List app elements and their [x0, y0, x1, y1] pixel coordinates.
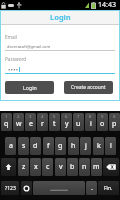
button[interactable]: Settings: [21, 181, 32, 195]
button[interactable]: 6: [61, 113, 72, 131]
staticText: c: [46, 162, 50, 172]
staticText: y: [65, 119, 69, 129]
staticText: h: [71, 141, 76, 151]
staticText: 8: [89, 114, 92, 120]
staticText: 1: [5, 114, 8, 120]
staticText: b: [70, 162, 75, 172]
staticText: .: [91, 183, 93, 193]
button[interactable]: k: [93, 137, 104, 155]
staticText: ?123: [5, 185, 16, 192]
staticText: r: [41, 119, 44, 129]
staticText: 14:43: [98, 0, 116, 10]
staticText: q: [4, 119, 9, 129]
staticText: u: [76, 119, 81, 129]
staticText: d: [33, 141, 38, 151]
button[interactable]: 8: [85, 113, 96, 131]
button[interactable]: 2: [13, 113, 24, 131]
button[interactable]: Shift: [1, 158, 16, 176]
staticText: Create account: [71, 84, 106, 91]
staticText: o: [100, 119, 105, 129]
staticText: s: [22, 141, 26, 151]
button[interactable]: x: [30, 158, 41, 176]
button[interactable]: Fin.: [98, 181, 119, 195]
staticText: i: [90, 119, 92, 129]
button[interactable]: 5: [49, 113, 60, 131]
staticText: 9: [101, 114, 104, 120]
button[interactable]: 9: [97, 113, 108, 131]
button[interactable]: 7: [73, 113, 84, 131]
staticText: 3: [29, 114, 32, 120]
button[interactable]: 3: [25, 113, 36, 131]
button[interactable]: f: [43, 137, 54, 155]
staticText: 7: [77, 114, 80, 120]
staticText: e: [29, 119, 33, 129]
staticText: k: [97, 141, 101, 151]
staticText: 0: [113, 114, 116, 120]
button[interactable]: 0: [109, 113, 120, 131]
button[interactable]: m: [91, 158, 102, 176]
staticText: j: [85, 141, 87, 151]
button[interactable]: a: [5, 137, 16, 155]
staticText: Fin.: [104, 185, 113, 192]
staticText: v: [59, 162, 63, 172]
button[interactable]: l: [105, 137, 116, 155]
staticText: 2: [17, 114, 20, 120]
staticText: Password: [5, 56, 27, 62]
button[interactable]: Login: [5, 81, 54, 94]
staticText: f: [47, 141, 50, 151]
button[interactable]: 4: [37, 113, 48, 131]
staticText: 6: [65, 114, 68, 120]
button[interactable]: Create account: [64, 81, 113, 94]
staticText: g: [58, 141, 63, 151]
button[interactable]: ?123: [1, 181, 19, 195]
button[interactable]: Space: [33, 181, 85, 195]
staticText: w: [16, 119, 22, 129]
staticText: m: [93, 162, 100, 172]
staticText: Email: [5, 34, 18, 40]
staticText: Login: [50, 12, 71, 22]
button[interactable]: c: [42, 158, 53, 176]
staticText: t: [53, 119, 56, 129]
button[interactable]: v: [55, 158, 66, 176]
staticText: x: [34, 162, 38, 172]
staticText: Login: [23, 84, 37, 91]
button[interactable]: Backspace: [103, 158, 119, 176]
button[interactable]: n: [79, 158, 90, 176]
button[interactable]: d: [30, 137, 41, 155]
button[interactable]: z: [18, 158, 29, 176]
staticText: a: [9, 141, 13, 151]
staticText: 4: [41, 114, 44, 120]
button[interactable]: s: [18, 137, 29, 155]
staticText: docreasoft@gmail.com: [7, 44, 51, 49]
button[interactable]: 1: [1, 113, 12, 131]
staticText: 5: [53, 114, 56, 120]
button[interactable]: g: [55, 137, 66, 155]
button[interactable]: j: [80, 137, 91, 155]
staticText: l: [110, 141, 112, 151]
button[interactable]: h: [68, 137, 79, 155]
button[interactable]: b: [67, 158, 78, 176]
button[interactable]: .: [86, 181, 97, 195]
staticText: n: [82, 162, 87, 172]
staticText: p: [112, 119, 117, 129]
staticText: z: [22, 162, 26, 172]
